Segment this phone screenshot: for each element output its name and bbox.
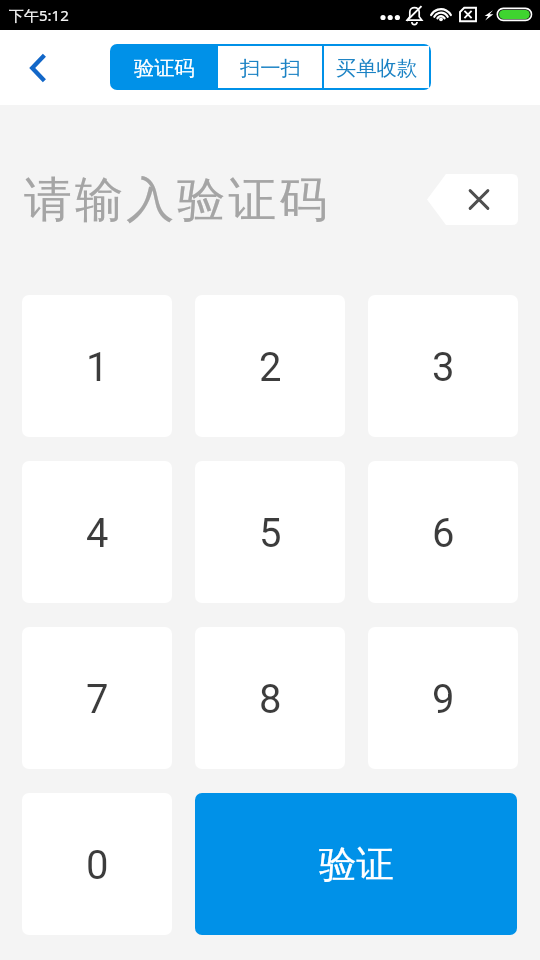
staticText: 0 <box>86 842 109 889</box>
button[interactable]: 5 <box>195 461 345 603</box>
button[interactable]: 扫一扫 <box>218 46 322 88</box>
button[interactable]: 0 <box>22 793 172 935</box>
staticText: 扫一扫 <box>240 55 301 81</box>
staticText: 下午5:12 <box>9 5 69 25</box>
button[interactable]: 9 <box>368 627 518 769</box>
staticText: 2 <box>259 344 282 391</box>
button[interactable]: 验证 <box>195 793 517 935</box>
button[interactable]: 6 <box>368 461 518 603</box>
staticText: 9 <box>432 676 455 723</box>
staticText: 验证 <box>319 841 394 888</box>
button[interactable]: Back <box>8 39 66 97</box>
button[interactable]: 4 <box>22 461 172 603</box>
staticText: 6 <box>432 510 455 557</box>
button[interactable]: 1 <box>22 295 172 437</box>
staticText: 1 <box>86 344 109 391</box>
staticText: 请输入验证码 <box>24 170 331 230</box>
staticText: 3 <box>432 344 455 391</box>
button[interactable]: 验证码 <box>112 46 216 88</box>
button[interactable]: 7 <box>22 627 172 769</box>
staticText: 7 <box>86 676 109 723</box>
button[interactable]: 2 <box>195 295 345 437</box>
button[interactable]: 买单收款 <box>324 46 429 88</box>
staticText: 8 <box>259 676 282 723</box>
button[interactable]: 3 <box>368 295 518 437</box>
button[interactable]: Clear <box>427 174 518 225</box>
staticText: 买单收款 <box>336 55 418 81</box>
staticText: 验证码 <box>134 55 195 81</box>
button[interactable]: 8 <box>195 627 345 769</box>
staticText: 5 <box>259 510 282 557</box>
staticText: 4 <box>86 510 109 557</box>
